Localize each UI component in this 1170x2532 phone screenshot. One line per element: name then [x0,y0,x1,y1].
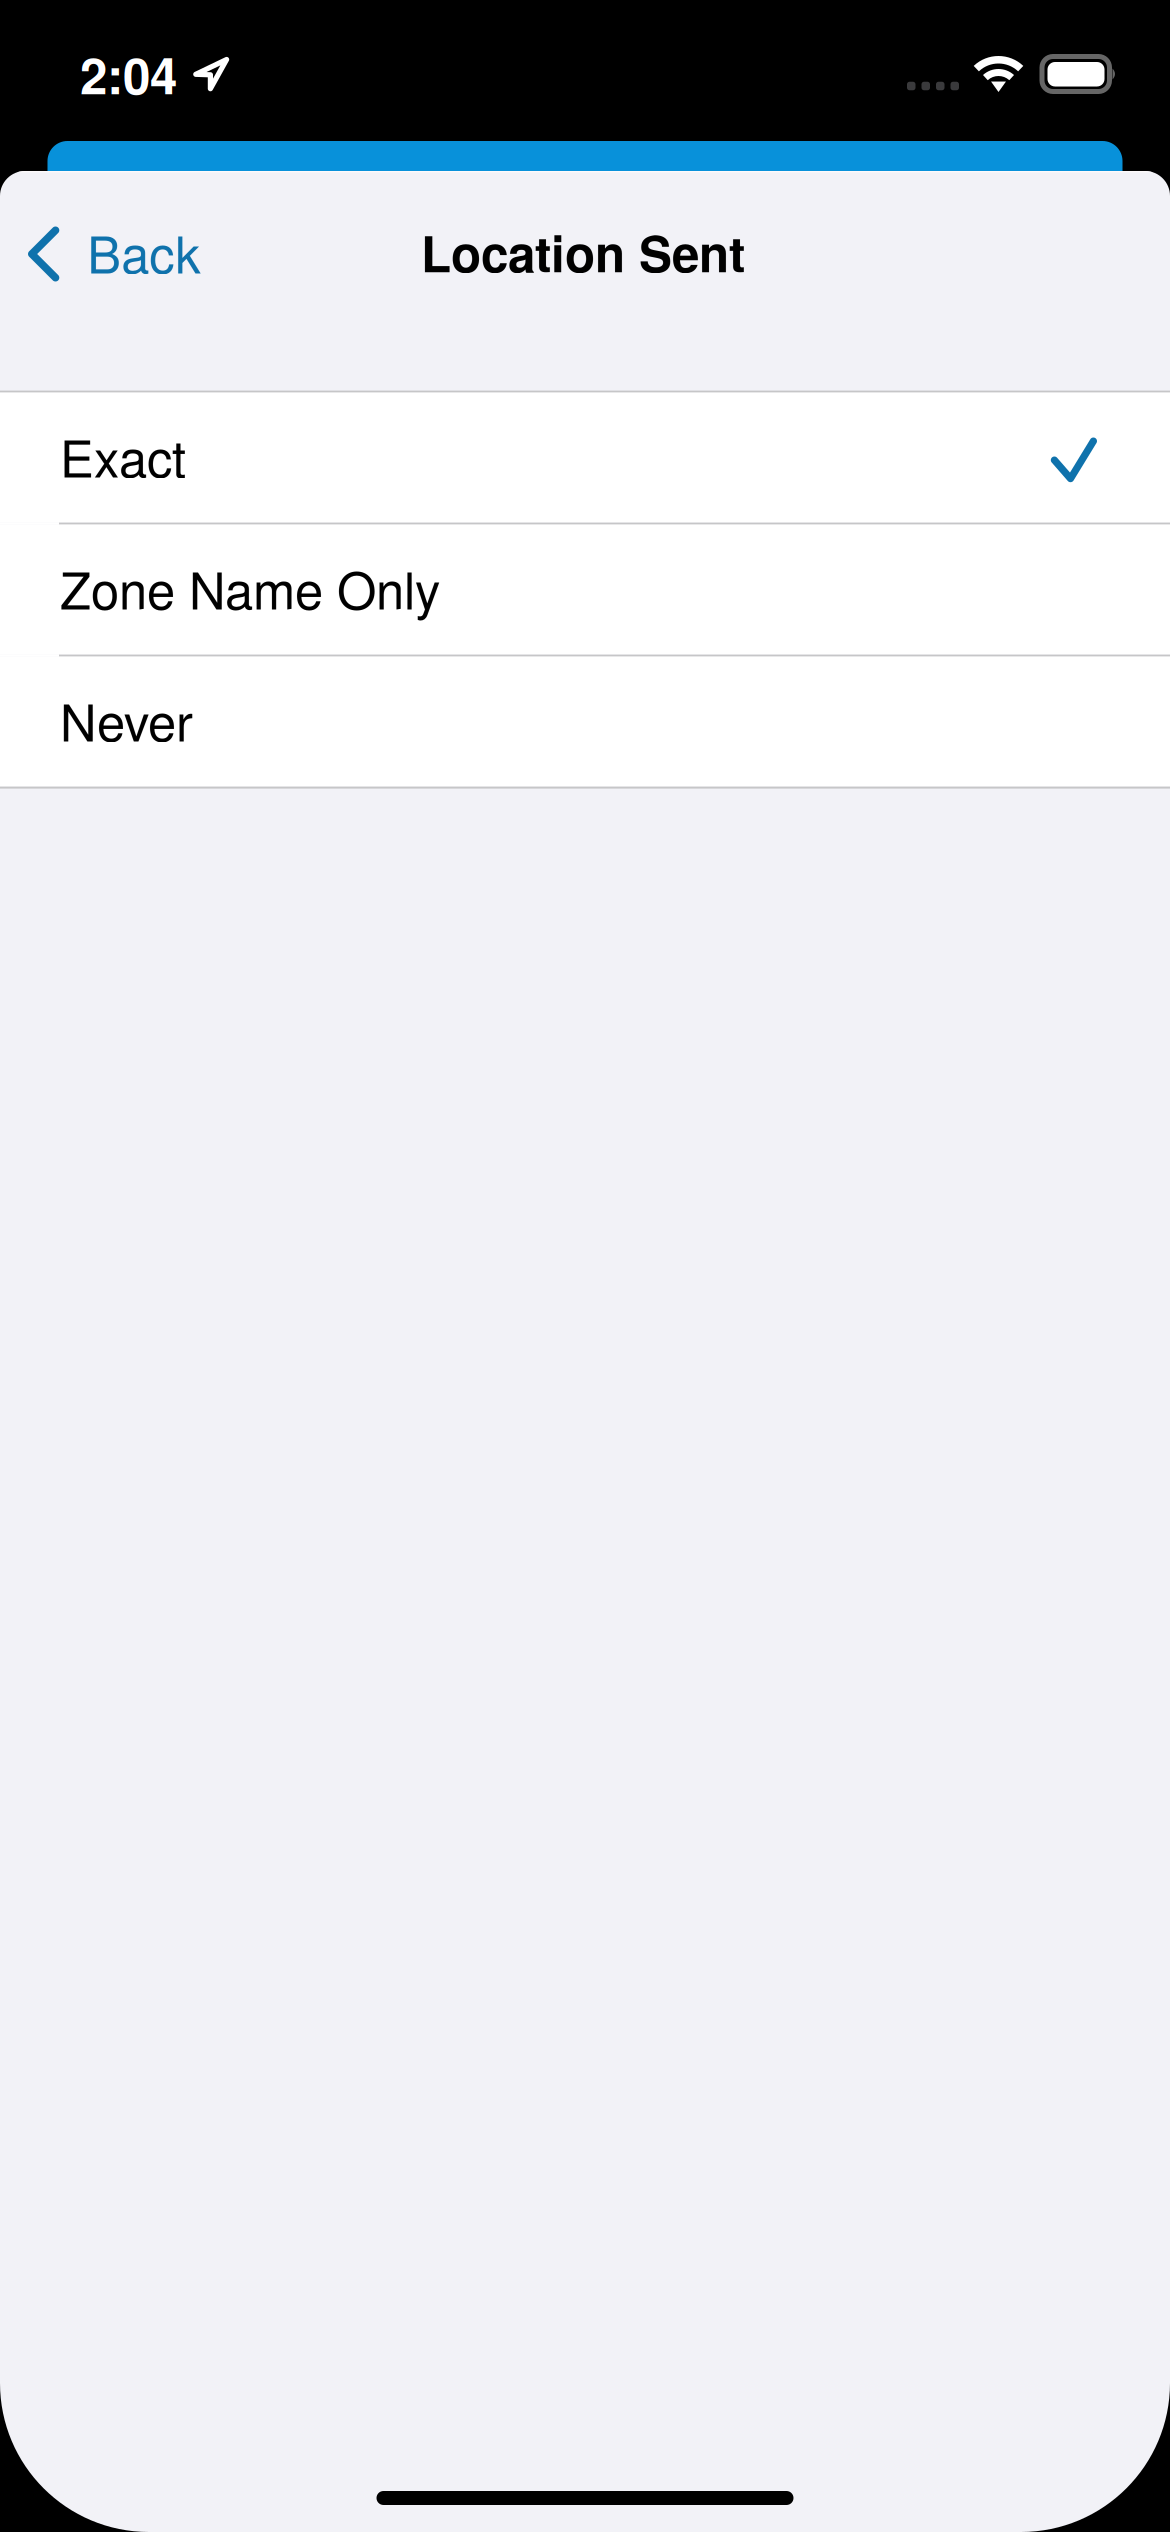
staticText: 2:04 [80,39,177,109]
staticText: Location Sent [421,217,745,287]
staticText: Exact [60,419,186,492]
staticText: Zone Name Only [60,551,440,624]
button[interactable]: Exact [0,393,1170,523]
staticText: Back [87,215,200,288]
button[interactable]: Never [0,657,1170,787]
button[interactable]: Zone Name Only [0,525,1170,655]
button[interactable]: Back [0,188,226,320]
staticText: Never [60,683,193,756]
